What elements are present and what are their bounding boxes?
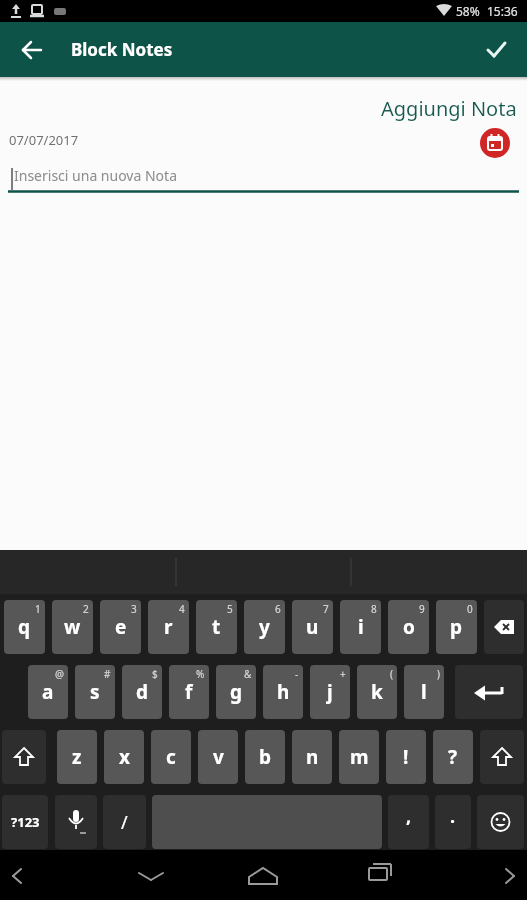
- staticText: 8: [371, 602, 377, 616]
- staticText: %: [196, 667, 205, 681]
- staticText: &: [244, 667, 252, 681]
- staticText: l: [421, 679, 427, 705]
- staticText: z: [72, 744, 82, 770]
- button[interactable]: [480, 730, 524, 784]
- staticText: 3: [131, 602, 137, 616]
- staticText: b: [259, 744, 272, 770]
- staticText: ): [437, 667, 440, 681]
- button[interactable]: z: [57, 730, 97, 784]
- button[interactable]: ,: [388, 795, 429, 849]
- button[interactable]: h: [263, 665, 303, 719]
- button[interactable]: j: [310, 665, 350, 719]
- staticText: 9: [419, 602, 425, 616]
- staticText: y: [259, 614, 270, 640]
- staticText: x: [119, 744, 130, 770]
- staticText: 7: [323, 602, 329, 616]
- staticText: t: [212, 614, 221, 640]
- button[interactable]: [0, 22, 48, 77]
- button[interactable]: r: [148, 600, 189, 654]
- staticText: @: [55, 667, 64, 681]
- button[interactable]: ?123: [2, 795, 48, 849]
- staticText: 2: [83, 602, 89, 616]
- button[interactable]: [422, 850, 527, 900]
- button[interactable]: v: [198, 730, 238, 784]
- staticText: 1: [35, 602, 41, 616]
- staticText: d: [136, 679, 149, 705]
- staticText: $: [152, 667, 158, 681]
- button[interactable]: .: [435, 795, 471, 849]
- staticText: g: [230, 679, 243, 705]
- staticText: 4: [179, 602, 185, 616]
- staticText: r: [164, 614, 173, 640]
- staticText: Inserisci una nuova Nota: [14, 166, 177, 185]
- staticText: j: [327, 679, 333, 705]
- button[interactable]: i: [340, 600, 381, 654]
- button[interactable]: g: [216, 665, 256, 719]
- staticText: (: [390, 667, 393, 681]
- staticText: 6: [275, 602, 281, 616]
- button[interactable]: o: [388, 600, 429, 654]
- button[interactable]: m: [339, 730, 379, 784]
- staticText: ?123: [11, 813, 40, 831]
- staticText: m: [350, 744, 369, 770]
- staticText: o: [403, 614, 415, 640]
- staticText: i: [358, 614, 364, 640]
- staticText: q: [18, 614, 31, 640]
- button[interactable]: [484, 600, 524, 654]
- staticText: .: [450, 804, 456, 829]
- button[interactable]: b: [245, 730, 285, 784]
- staticText: h: [277, 679, 290, 705]
- staticText: ?: [448, 744, 458, 770]
- button[interactable]: e: [100, 600, 141, 654]
- staticText: f: [185, 679, 193, 705]
- button[interactable]: f: [169, 665, 209, 719]
- button[interactable]: s: [75, 665, 115, 719]
- button[interactable]: p: [436, 600, 477, 654]
- staticText: Block Notes: [71, 38, 173, 61]
- button[interactable]: [455, 665, 523, 719]
- button[interactable]: n: [292, 730, 332, 784]
- button[interactable]: [106, 850, 212, 900]
- button[interactable]: y: [244, 600, 285, 654]
- staticText: #: [104, 667, 111, 681]
- button[interactable]: [479, 22, 527, 77]
- staticText: !: [403, 744, 409, 770]
- staticText: 5: [227, 602, 233, 616]
- staticText: v: [213, 744, 224, 770]
- button[interactable]: [477, 795, 524, 849]
- button[interactable]: q: [4, 600, 45, 654]
- staticText: c: [166, 744, 176, 770]
- button[interactable]: l: [404, 665, 444, 719]
- button[interactable]: t: [196, 600, 237, 654]
- staticText: a: [42, 679, 54, 705]
- button[interactable]: [2, 730, 46, 784]
- button[interactable]: u: [292, 600, 333, 654]
- button[interactable]: w: [52, 600, 93, 654]
- staticText: -: [295, 667, 299, 681]
- button[interactable]: [55, 795, 97, 849]
- staticText: w: [64, 614, 81, 640]
- staticText: /: [121, 810, 128, 835]
- staticText: u: [306, 614, 319, 640]
- staticText: 07/07/2017: [9, 131, 79, 149]
- button[interactable]: [212, 850, 317, 900]
- button[interactable]: [480, 128, 510, 158]
- staticText: s: [90, 679, 100, 705]
- button[interactable]: ?: [433, 730, 473, 784]
- button[interactable]: x: [104, 730, 144, 784]
- button[interactable]: c: [151, 730, 191, 784]
- button[interactable]: !: [386, 730, 426, 784]
- button[interactable]: k: [357, 665, 397, 719]
- button[interactable]: d: [122, 665, 162, 719]
- staticText: 58%: [456, 3, 480, 19]
- staticText: +: [340, 667, 346, 681]
- staticText: e: [115, 614, 127, 640]
- button[interactable]: [0, 850, 106, 900]
- button[interactable]: /: [103, 795, 146, 849]
- staticText: Aggiungi Nota: [381, 95, 517, 122]
- button[interactable]: a: [28, 665, 68, 719]
- staticText: 0: [467, 602, 473, 616]
- button[interactable]: [317, 850, 422, 900]
- staticText: ,: [406, 804, 412, 829]
